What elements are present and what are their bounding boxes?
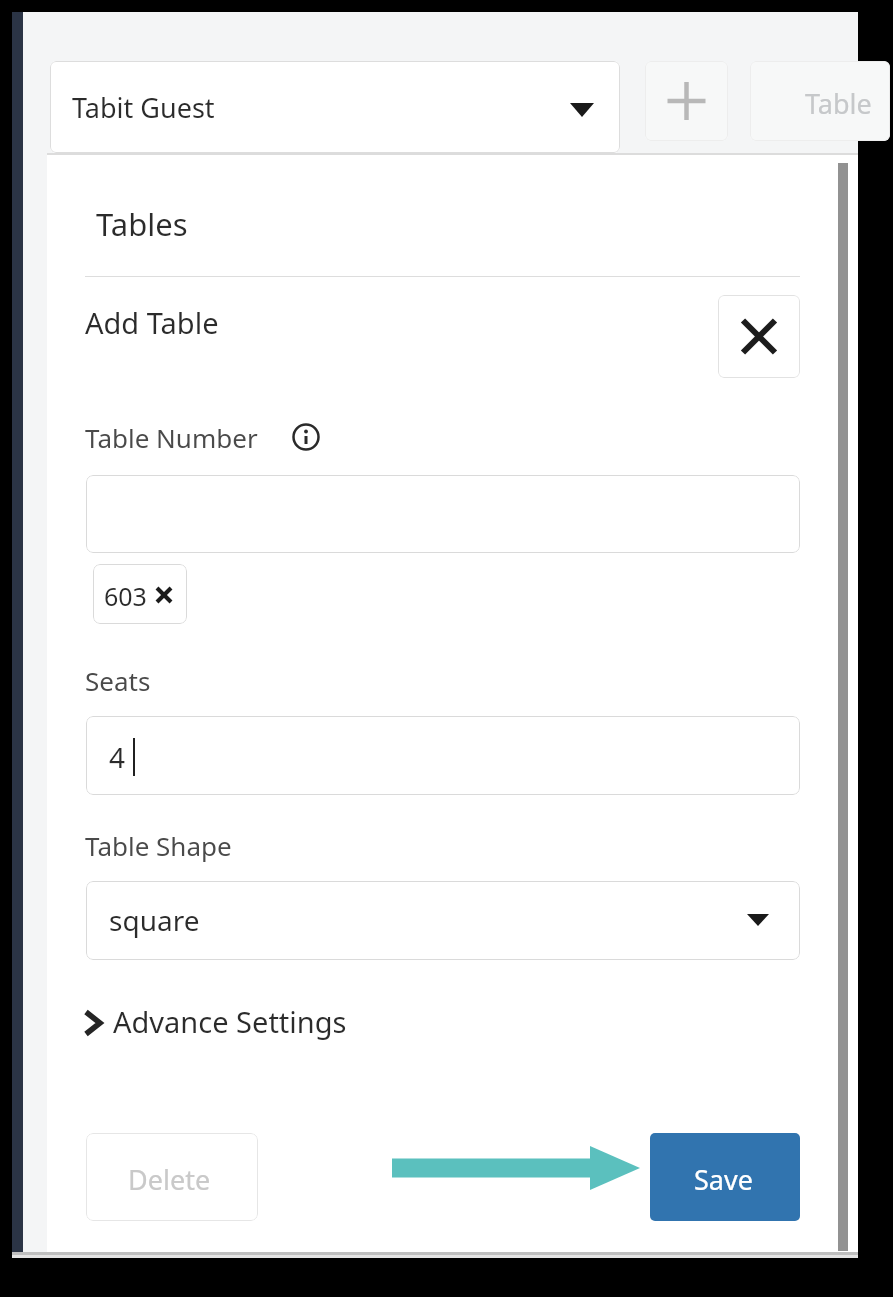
button[interactable]: Delete — [86, 1133, 258, 1221]
button[interactable]: Add — [645, 61, 728, 141]
button[interactable]: 603 — [93, 564, 187, 624]
button[interactable] — [86, 475, 800, 553]
button[interactable]: Save — [650, 1133, 800, 1221]
button[interactable]: 4 — [86, 716, 800, 795]
staticText: 603 — [104, 579, 147, 613]
staticText: Delete — [128, 1161, 211, 1198]
staticText: square — [109, 901, 200, 939]
staticText: Add Table — [85, 303, 219, 342]
staticText: Table Shape — [85, 828, 232, 863]
staticText: Tables — [96, 203, 188, 245]
button[interactable]: Table — [750, 61, 890, 141]
staticText: Table — [805, 85, 872, 122]
staticText: Advance Settings — [113, 1002, 347, 1041]
button[interactable]: Tabit Guest — [50, 61, 620, 153]
staticText: Table Number — [85, 420, 258, 455]
staticText: Save — [694, 1161, 753, 1198]
staticText: Tabit Guest — [72, 89, 215, 126]
staticText: Seats — [85, 663, 151, 698]
button[interactable]: square — [86, 881, 800, 960]
button[interactable]: Advance Settings — [80, 1000, 380, 1046]
button[interactable]: Close — [718, 295, 800, 378]
staticText: 4 — [109, 738, 126, 776]
